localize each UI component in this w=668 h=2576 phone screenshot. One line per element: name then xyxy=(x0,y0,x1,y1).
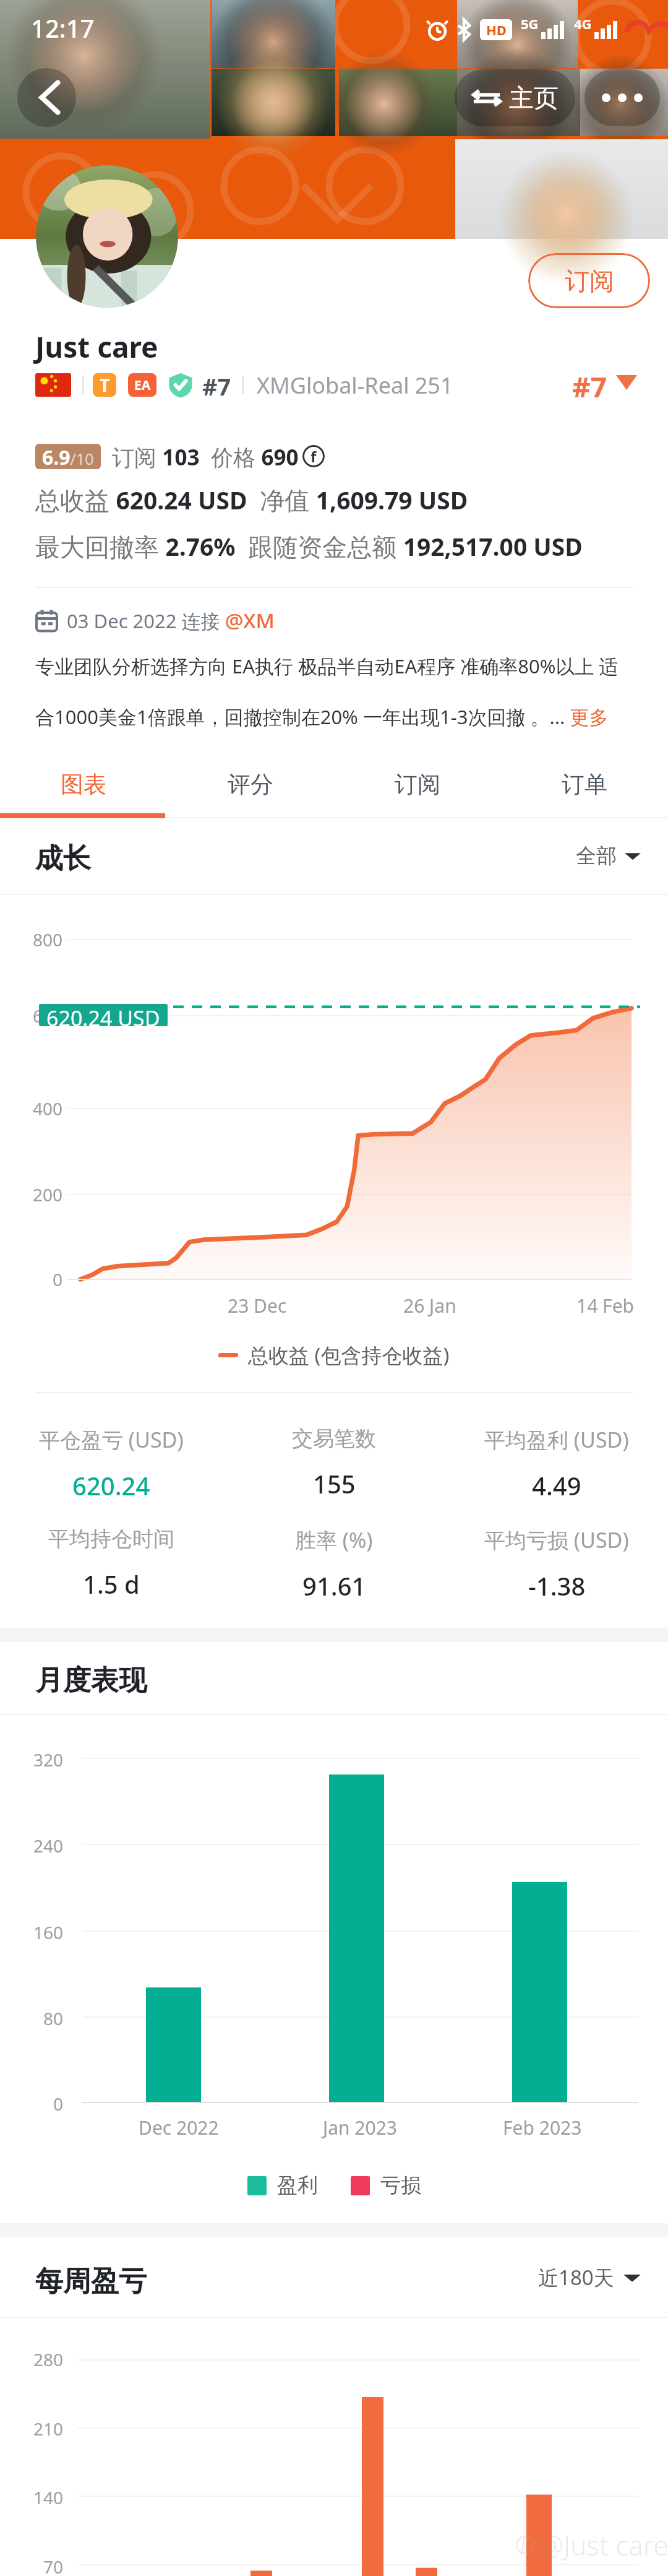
staticText: 155 xyxy=(313,1467,356,1500)
staticText: Dec 2022 xyxy=(139,2115,219,2140)
staticText: 0 xyxy=(0,1268,62,1291)
button[interactable]: #7 xyxy=(572,368,637,397)
staticText: 320 xyxy=(0,1748,63,1771)
button[interactable]: Back xyxy=(17,68,76,127)
staticText: Jan 2023 xyxy=(323,2115,397,2140)
staticText: 平仓盈亏 (USD) xyxy=(39,1425,184,1454)
staticText: 400 xyxy=(0,1097,62,1120)
staticText: 210 xyxy=(0,2417,63,2440)
staticText: 订阅 xyxy=(565,266,614,296)
staticText: 5G xyxy=(521,14,539,33)
staticText: 每周盈亏 xyxy=(35,2264,147,2299)
button[interactable]: 主页 xyxy=(455,69,575,126)
button[interactable]: 图表 xyxy=(0,737,167,815)
button[interactable]: 订阅 xyxy=(334,737,501,815)
staticText: 91.61 xyxy=(302,1569,366,1602)
staticText: HD xyxy=(486,20,507,39)
staticText: 胜率 (%) xyxy=(295,1526,373,1554)
staticText: #7 xyxy=(572,368,607,397)
staticText: f xyxy=(310,446,317,467)
staticText: -1.38 xyxy=(528,1569,586,1602)
staticText: 4.49 xyxy=(532,1469,581,1502)
staticText: Feb 2023 xyxy=(503,2115,582,2140)
staticText: 620.24 USD xyxy=(46,1004,160,1026)
staticText: 600 xyxy=(0,1004,62,1027)
staticText: 成长 xyxy=(35,841,91,876)
staticText: 平均持仓时间 xyxy=(48,1526,174,1552)
staticText: 14 Feb xyxy=(576,1293,635,1318)
staticText: 4G xyxy=(574,14,592,33)
staticText: Just care xyxy=(35,327,158,366)
button[interactable]: More options xyxy=(584,69,660,126)
staticText: 800 xyxy=(0,928,62,951)
staticText: 240 xyxy=(0,1834,63,1857)
staticText: 200 xyxy=(0,1183,62,1206)
staticText: 26 Jan xyxy=(403,1293,456,1318)
staticText: 平均亏损 (USD) xyxy=(484,1526,629,1554)
staticText: #7 xyxy=(202,370,231,400)
staticText: 平均盈利 (USD) xyxy=(484,1425,629,1454)
staticText: 订阅 103 价格 690 xyxy=(112,442,299,470)
staticText: @Just care xyxy=(539,2526,668,2564)
staticText: 23 Dec xyxy=(228,1293,287,1318)
staticText: 140 xyxy=(0,2486,63,2509)
staticText: 盈利 xyxy=(277,2172,318,2198)
button[interactable]: 全部 xyxy=(576,843,641,869)
staticText: 主页 xyxy=(509,82,559,113)
staticText: 1.5 d xyxy=(83,1567,140,1601)
staticText: 160 xyxy=(0,1921,63,1944)
staticText: T xyxy=(100,373,110,397)
staticText: 0 xyxy=(0,2092,63,2116)
staticText: 全部 xyxy=(576,843,617,869)
button[interactable]: 评分 xyxy=(167,737,334,815)
staticText: 订单 xyxy=(562,770,607,799)
staticText: 总收益 620.24 USD 净值 1,609.79 USD xyxy=(35,483,468,517)
staticText: 620.24 xyxy=(72,1469,150,1502)
button[interactable]: 近180天 xyxy=(538,2263,641,2291)
staticText: 总收益 (包含持仓收益) xyxy=(248,1341,450,1369)
staticText: 专业团队分析选择方向 EA执行 极品半自动EA程序 准确率80%以上 适合100… xyxy=(35,653,627,730)
staticText: 交易笔数 xyxy=(292,1425,376,1452)
staticText: 评分 xyxy=(228,770,273,799)
staticText: 70 xyxy=(0,2555,63,2576)
button[interactable]: 订单 xyxy=(501,737,668,815)
staticText: 近180天 xyxy=(538,2263,614,2291)
staticText: 亏损 xyxy=(380,2172,421,2198)
staticText: 6.9/10 xyxy=(42,444,94,469)
staticText: 80 xyxy=(0,2007,63,2030)
staticText: 03 Dec 2022 连接 @XM xyxy=(67,607,275,634)
staticText: 图表 xyxy=(61,770,106,799)
button[interactable]: Profile photo xyxy=(36,165,178,308)
staticText: 最大回撤率 2.76% 跟随资金总额 192,517.00 USD xyxy=(35,529,583,563)
staticText: 订阅 xyxy=(395,770,440,799)
staticText: 12:17 xyxy=(31,11,95,45)
button[interactable]: 订阅 xyxy=(528,253,650,308)
staticText: 280 xyxy=(0,2348,63,2371)
staticText: 月度表现 xyxy=(35,1663,147,1698)
staticText: EA xyxy=(134,376,151,394)
staticText: XMGlobal-Real 251 xyxy=(257,370,453,400)
